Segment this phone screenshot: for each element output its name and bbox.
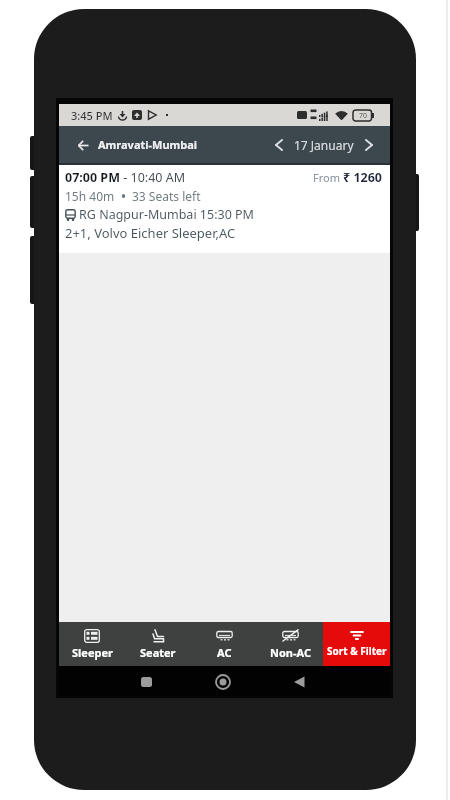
- staticText: AC: [217, 645, 232, 660]
- button[interactable]: Sort & Filter: [323, 622, 390, 666]
- button[interactable]: Non-AC: [257, 622, 323, 666]
- button[interactable]: [215, 674, 231, 690]
- staticText: - 10:40 AM: [120, 169, 186, 186]
- button[interactable]: [293, 676, 306, 688]
- button[interactable]: 07:00 PM: [59, 165, 390, 253]
- staticText: Sort & Filter: [327, 644, 387, 658]
- staticText: Sleeper: [72, 645, 113, 660]
- staticText: Amravati-Mumbai: [98, 137, 198, 152]
- staticText: 33 Seats left: [132, 188, 201, 204]
- button[interactable]: Seater: [125, 622, 191, 666]
- button[interactable]: Sleeper: [59, 622, 125, 666]
- staticText: 17 January: [294, 137, 354, 153]
- button[interactable]: AC: [191, 622, 257, 666]
- staticText: 2+1, Volvo Eicher Sleeper,AC: [65, 224, 236, 242]
- staticText: •: [115, 188, 132, 204]
- staticText: 15h 40m: [65, 188, 115, 204]
- button[interactable]: 17 January: [275, 137, 373, 153]
- staticText: 3:45 PM: [71, 108, 113, 123]
- staticText: Seater: [140, 645, 176, 660]
- button[interactable]: [72, 134, 94, 156]
- staticText: Non-AC: [270, 645, 311, 660]
- staticText: ₹ 1260: [343, 169, 383, 186]
- staticText: 07:00 PM: [65, 169, 120, 186]
- staticText: 70: [359, 111, 368, 121]
- staticText: RG Nagpur-Mumbai 15:30 PM: [79, 206, 254, 223]
- staticText: From: [313, 170, 343, 185]
- button[interactable]: [140, 676, 152, 687]
